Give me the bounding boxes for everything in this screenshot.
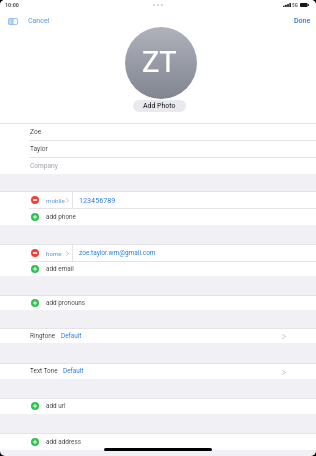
button[interactable]: add pronouns <box>0 295 316 310</box>
staticText: add address <box>46 438 82 446</box>
staticText: 5G <box>292 3 298 8</box>
button[interactable]: Cancel <box>24 14 54 28</box>
staticText: 123456789 <box>79 196 116 204</box>
button[interactable]: Text Tone <box>0 363 316 379</box>
staticText: Default <box>63 367 84 375</box>
staticText: Default <box>61 332 82 340</box>
button[interactable]: Ringtone <box>0 328 316 343</box>
staticText: Done <box>294 17 311 25</box>
button[interactable]: home <box>0 244 316 261</box>
button[interactable]: Done <box>289 14 316 28</box>
button[interactable]: mobile <box>0 191 316 208</box>
button[interactable]: Taylor <box>0 140 316 157</box>
staticText: add pronouns <box>46 299 86 307</box>
button[interactable]: add phone <box>0 208 316 225</box>
staticText: Add Photo <box>143 102 176 110</box>
button[interactable]: Contact photo <box>125 27 197 99</box>
staticText: add phone <box>46 213 76 221</box>
staticText: add email <box>46 265 74 273</box>
staticText: 10:00 <box>5 2 19 8</box>
button[interactable]: add url <box>0 398 316 414</box>
staticText: ZT <box>142 45 177 79</box>
staticText: add url <box>46 402 66 410</box>
staticText: zoe.taylor.wm@gmail.com <box>79 249 156 257</box>
button[interactable]: add address <box>0 433 316 450</box>
button[interactable]: Company <box>0 157 316 174</box>
button[interactable]: Add Photo <box>133 100 186 112</box>
staticText: Company <box>30 162 58 170</box>
button[interactable]: add email <box>0 261 316 277</box>
staticText: Cancel <box>28 17 50 25</box>
button[interactable]: Show sidebar <box>5 15 21 28</box>
staticText: Text Tone <box>30 367 58 375</box>
staticText: home <box>46 250 62 257</box>
staticText: mobile <box>46 197 65 204</box>
staticText: Taylor <box>30 145 48 153</box>
staticText: Ringtone <box>30 332 56 340</box>
staticText: Zoe <box>30 128 42 136</box>
button[interactable]: Zoe <box>0 123 316 140</box>
